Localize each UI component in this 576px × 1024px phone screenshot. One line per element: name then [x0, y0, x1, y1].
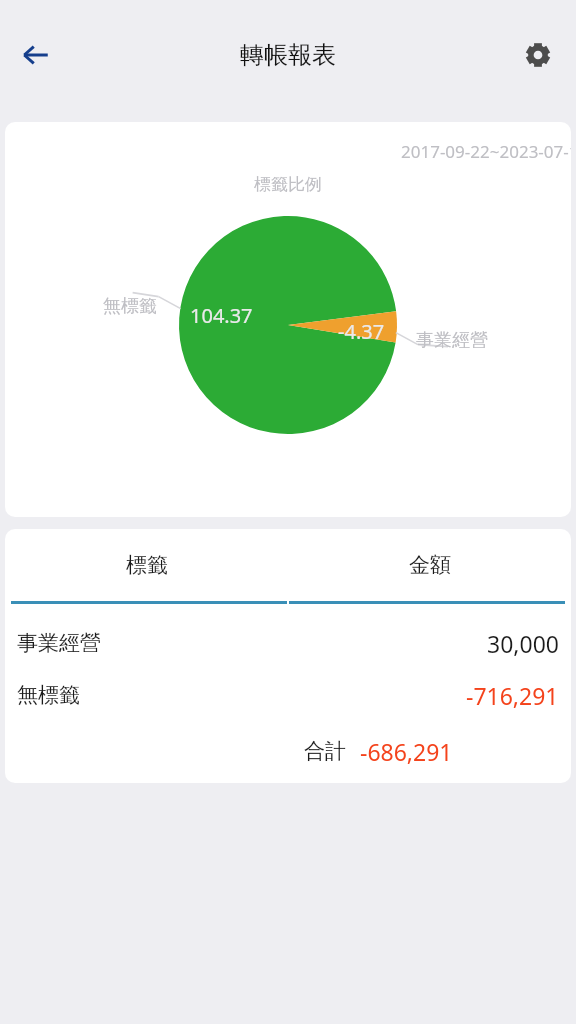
staticText: 合計 — [304, 738, 346, 764]
staticText: 事業經營 — [416, 329, 488, 352]
button[interactable]: 標籤 — [5, 529, 288, 601]
staticText: 30,000 — [487, 628, 559, 659]
button[interactable]: Back — [8, 27, 64, 83]
staticText: 標籤比例 — [254, 174, 322, 195]
button[interactable]: 無標籤 — [5, 674, 571, 716]
staticText: 事業經營 — [17, 630, 101, 656]
staticText: 104.37 — [190, 302, 253, 329]
staticText: 無標籤 — [17, 682, 80, 708]
staticText: -686,291 — [360, 736, 453, 767]
staticText: 金額 — [409, 552, 451, 578]
button[interactable]: Settings — [510, 27, 566, 83]
staticText: 2017-09-22~2023-07-19 — [401, 140, 571, 163]
staticText: -716,291 — [466, 680, 559, 711]
staticText: -4.37 — [338, 318, 385, 345]
staticText: 轉帳報表 — [240, 40, 336, 70]
button[interactable]: 事業經營 — [5, 622, 571, 664]
button[interactable]: 金額 — [288, 529, 571, 601]
staticText: 無標籤 — [103, 295, 157, 318]
staticText: 標籤 — [126, 552, 168, 578]
